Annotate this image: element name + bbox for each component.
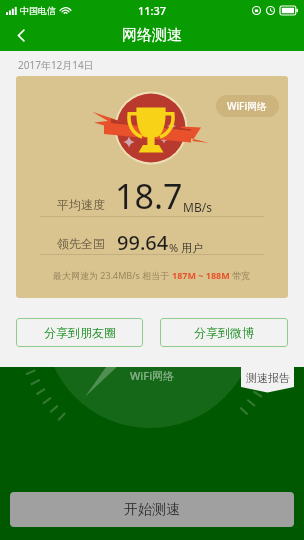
staticText: 99.64: [117, 229, 169, 256]
staticText: 网络测速: [122, 26, 182, 45]
staticText: 最大网速为 23.4MB/s 相当于: [53, 269, 172, 281]
staticText: WiFi网络: [130, 368, 175, 383]
staticText: 11:37: [138, 3, 167, 18]
staticText: 测速报告: [246, 371, 290, 385]
staticText: WiFi网络: [227, 99, 268, 113]
button[interactable]: 开始测速: [10, 492, 294, 527]
button[interactable]: 分享到朋友圈: [16, 318, 143, 347]
staticText: 中国电信: [20, 5, 56, 16]
staticText: 2017年12月14日: [18, 58, 94, 72]
staticText: 分享到朋友圈: [44, 325, 116, 340]
staticText: 分享到微博: [194, 325, 254, 340]
staticText: 带宽: [230, 269, 251, 281]
staticText: 领先全国: [57, 236, 105, 251]
button[interactable]: 分享到微博: [160, 318, 288, 347]
button[interactable]: Back: [0, 20, 42, 51]
staticText: 开始测速: [124, 501, 180, 519]
staticText: MB/s: [183, 199, 212, 215]
staticText: 18.7: [115, 173, 183, 219]
staticText: 平均速度: [57, 197, 105, 212]
button[interactable]: 测速报告: [241, 366, 294, 393]
staticText: % 用户: [169, 240, 204, 255]
staticText: 187M ~ 188M: [172, 269, 230, 281]
